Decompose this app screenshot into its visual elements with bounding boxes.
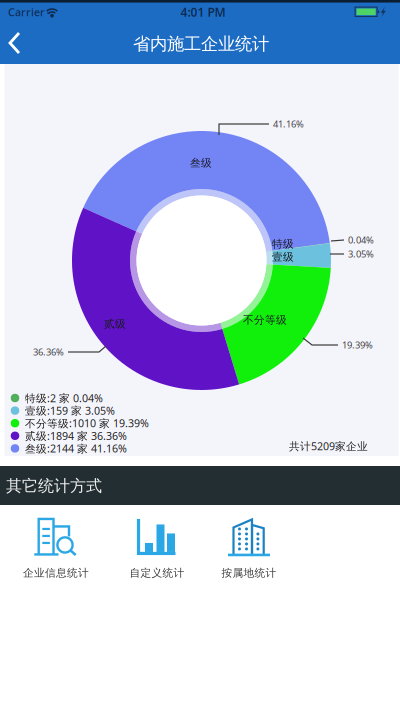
staticText: 36.36%: [33, 346, 64, 358]
staticText: 3.05%: [348, 248, 374, 260]
staticText: 贰级:1894 家 36.36%: [25, 429, 127, 443]
staticText: Carrier: [8, 5, 45, 19]
staticText: 企业信息统计: [23, 566, 89, 579]
staticText: 不分等级: [243, 313, 287, 326]
button[interactable]: 企业信息统计: [8, 512, 104, 584]
staticText: 自定义统计: [129, 566, 184, 579]
staticText: 省内施工企业统计: [133, 33, 269, 55]
staticText: 共计5209家企业: [289, 439, 368, 453]
staticText: 其它统计方式: [6, 476, 102, 496]
button[interactable]: 自定义统计: [109, 512, 205, 584]
staticText: 叁级:2144 家 41.16%: [25, 441, 127, 455]
staticText: 19.39%: [342, 339, 373, 351]
button[interactable]: 按属地统计: [201, 512, 297, 584]
staticText: 不分等级:1010 家 19.39%: [25, 416, 149, 430]
staticText: 41.16%: [273, 118, 304, 130]
staticText: 特级:2 家 0.04%: [25, 391, 103, 405]
staticText: 贰级: [104, 317, 126, 330]
staticText: 0.04%: [348, 234, 374, 246]
staticText: 壹级: [272, 250, 294, 263]
staticText: 4:01 PM: [180, 4, 225, 20]
staticText: 按属地统计: [221, 566, 276, 579]
staticText: 叁级: [190, 156, 212, 169]
staticText: 特级: [272, 237, 294, 250]
button[interactable]: Back: [3, 22, 47, 64]
staticText: 壹级:159 家 3.05%: [25, 403, 115, 418]
